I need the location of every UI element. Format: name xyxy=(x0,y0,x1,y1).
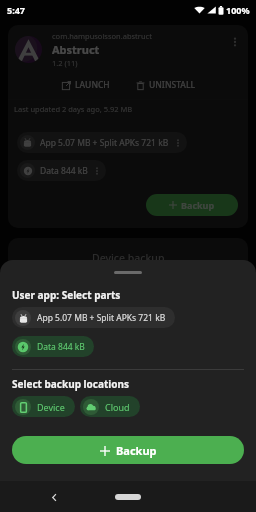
button[interactable]: More options xyxy=(226,33,244,51)
staticText: Backup xyxy=(116,443,157,458)
staticText: Device backup xyxy=(92,251,165,265)
button[interactable]: App 5.07 MB + Split APKs 721 kB xyxy=(12,307,175,328)
button[interactable]: Back xyxy=(45,488,63,506)
staticText: Device xyxy=(37,401,65,413)
staticText: Backup xyxy=(181,199,215,211)
button[interactable]: Device xyxy=(12,396,75,417)
staticText: Data 844 kB xyxy=(40,165,88,177)
button[interactable]: Data 844 kB xyxy=(17,160,106,181)
staticText: Select backup locations xyxy=(12,377,130,391)
staticText: Data 844 kB xyxy=(37,341,85,353)
staticText: User app: Select parts xyxy=(12,288,121,302)
button[interactable]: UNINSTALL xyxy=(131,75,200,95)
staticText: 5:47 xyxy=(7,4,25,16)
button[interactable]: Backup xyxy=(12,436,244,464)
button[interactable]: Home xyxy=(115,494,141,500)
staticText: UNINSTALL xyxy=(149,79,195,91)
button[interactable]: Data 844 kB xyxy=(12,336,94,357)
staticText: 100% xyxy=(226,4,250,16)
button[interactable]: Cloud xyxy=(80,396,140,417)
staticText: App 5.07 MB + Split APKs 721 kB xyxy=(37,312,166,324)
staticText: Cloud xyxy=(105,401,130,413)
staticText: com.hampusolsson.abstruct xyxy=(52,31,152,41)
staticText: LAUNCH xyxy=(75,79,110,91)
staticText: Abstruct xyxy=(52,42,100,57)
button[interactable]: Backup xyxy=(146,194,238,216)
staticText: 1.2 (11) xyxy=(52,58,78,68)
staticText: App 5.07 MB + Split APKs 721 kB xyxy=(40,137,169,149)
button[interactable]: App 5.07 MB + Split APKs 721 kB xyxy=(17,132,187,153)
button[interactable]: LAUNCH xyxy=(57,75,115,95)
staticText: Last updated 2 days ago, 5.92 MB xyxy=(14,104,133,114)
button[interactable]: Device backup xyxy=(8,238,248,308)
